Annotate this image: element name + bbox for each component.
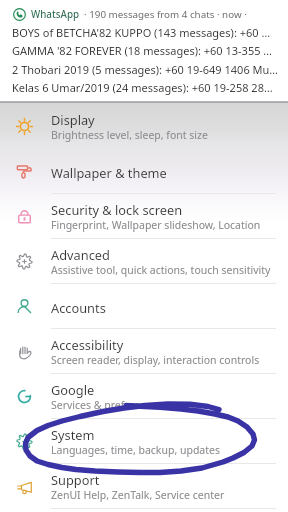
- staticText: Assistive tool, quick actions, touch sen…: [51, 263, 271, 277]
- button[interactable]: Display: [0, 104, 288, 149]
- button[interactable]: Security & lock screen: [0, 194, 288, 239]
- staticText: GAMMA '82 FOREVER (18 messages): +60 13-…: [12, 43, 273, 58]
- button[interactable]: Wallpaper & theme: [0, 149, 288, 194]
- button[interactable]: Google: [0, 374, 288, 419]
- staticText: 2 Thobari 2019 (5 messages): +60 19-649 …: [12, 62, 279, 77]
- staticText: Accessibility: [51, 336, 124, 353]
- staticText: Fingerprint, Wallpaper slideshow, Locati…: [51, 218, 261, 232]
- other: Handwritten circle highlighting System: [0, 0, 288, 512]
- staticText: Accounts: [51, 299, 106, 316]
- button[interactable]: Accounts: [0, 284, 288, 329]
- staticText: WhatsApp: [31, 8, 80, 21]
- button[interactable]: Advanced: [0, 239, 288, 284]
- staticText: System: [51, 426, 95, 443]
- button[interactable]: WhatsApp: [0, 0, 288, 101]
- button[interactable]: System: [0, 419, 288, 464]
- staticText: ZenUI Help, ZenTalk, Service center: [51, 488, 225, 502]
- staticText: · 190 messages from 4 chats · now ·: [84, 8, 247, 21]
- staticText: Services & preferences: [51, 398, 163, 412]
- staticText: Wallpaper & theme: [51, 164, 167, 181]
- staticText: Kelas 6 Umar/2019 (24 messages): +60 19-…: [12, 80, 273, 95]
- button[interactable]: Support: [0, 464, 288, 509]
- staticText: Brightness level, sleep, font size: [51, 128, 208, 142]
- staticText: Advanced: [51, 246, 110, 263]
- button[interactable]: Accessibility: [0, 329, 288, 374]
- staticText: Google: [51, 381, 95, 398]
- staticText: Languages, time, backup, updates: [51, 443, 220, 457]
- staticText: Support: [51, 471, 100, 488]
- staticText: BOYS of BETCHA'82 KUPPO (143 messages): …: [12, 25, 271, 40]
- staticText: Security & lock screen: [51, 201, 183, 218]
- staticText: Display: [51, 111, 95, 128]
- staticText: Screen reader, display, interaction cont…: [51, 353, 260, 367]
